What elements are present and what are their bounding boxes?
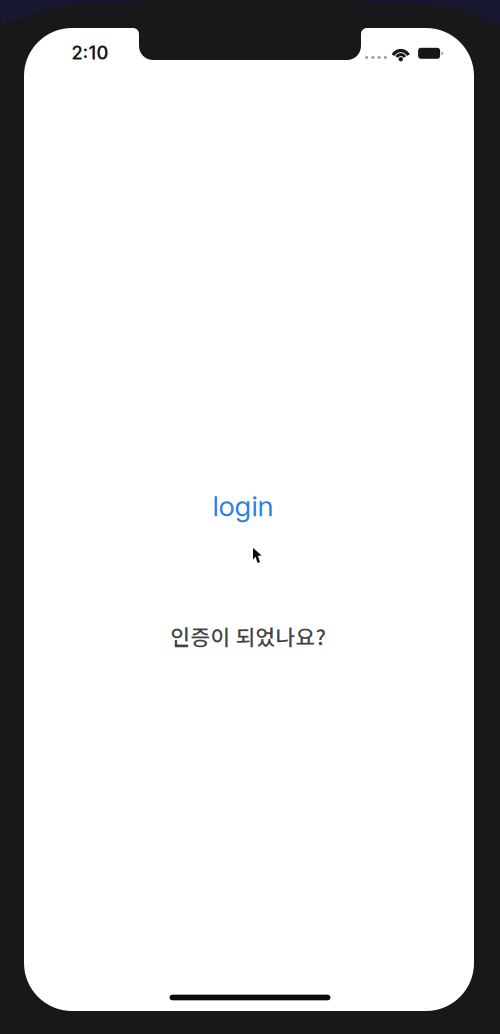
staticText: 2:10	[71, 42, 108, 64]
staticText: 인증이 되었나요?	[170, 621, 325, 651]
button[interactable]: login	[212, 489, 273, 523]
staticText: login	[212, 489, 273, 523]
